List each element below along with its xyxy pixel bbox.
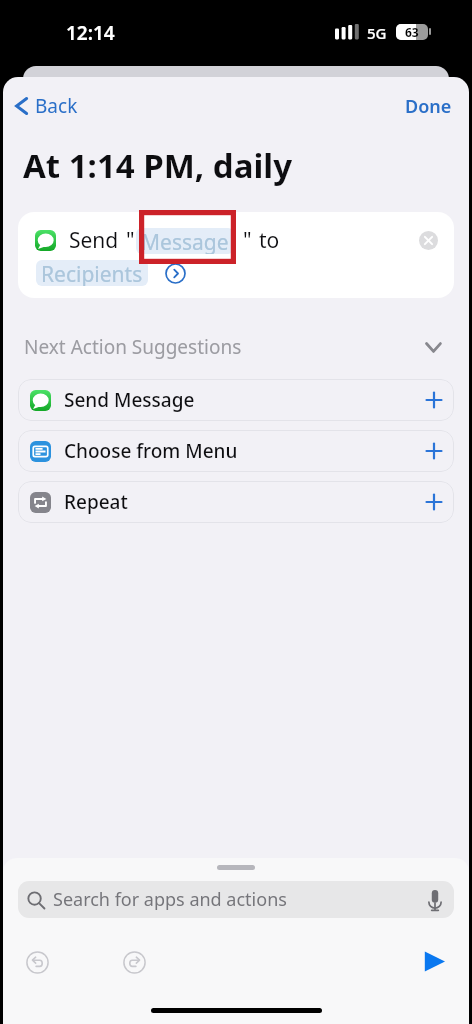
- staticText: to: [259, 226, 280, 255]
- button[interactable]: Voice search: [419, 884, 451, 916]
- button[interactable]: Add action: [420, 488, 448, 516]
- button[interactable]: Send Message: [18, 379, 454, 421]
- staticText: 63: [405, 24, 419, 40]
- staticText: Send: [69, 226, 119, 255]
- staticText: Search for apps and actions: [53, 887, 287, 912]
- button[interactable]: Run: [417, 944, 451, 978]
- staticText: Send Message: [64, 387, 195, 413]
- button[interactable]: Choose from Menu: [18, 430, 454, 472]
- staticText: 12:14: [66, 20, 115, 46]
- staticText: ": [243, 226, 252, 255]
- staticText: Done: [405, 94, 452, 119]
- button[interactable]: Undo: [23, 948, 51, 976]
- button[interactable]: Done: [405, 89, 452, 123]
- button[interactable]: Add action: [420, 437, 448, 465]
- button[interactable]: Add action: [420, 386, 448, 414]
- button[interactable]: Redo: [120, 948, 148, 976]
- staticText: Recipients: [41, 260, 143, 286]
- button[interactable]: Search for apps and actions: [18, 881, 454, 918]
- button[interactable]: Repeat: [18, 481, 454, 523]
- button[interactable]: Remove action: [414, 226, 443, 255]
- staticText: Choose from Menu: [64, 438, 238, 464]
- staticText: ": [126, 226, 135, 255]
- staticText: Back: [35, 93, 78, 119]
- staticText: Message: [141, 228, 229, 254]
- button[interactable]: Send: [18, 212, 454, 298]
- staticText: 5G: [367, 23, 387, 43]
- staticText: Next Action Suggestions: [24, 334, 242, 360]
- button[interactable]: Back: [15, 89, 78, 123]
- button[interactable]: Next Action Suggestions: [24, 330, 442, 364]
- staticText: Repeat: [64, 489, 128, 515]
- staticText: At 1:14 PM, daily: [23, 143, 292, 188]
